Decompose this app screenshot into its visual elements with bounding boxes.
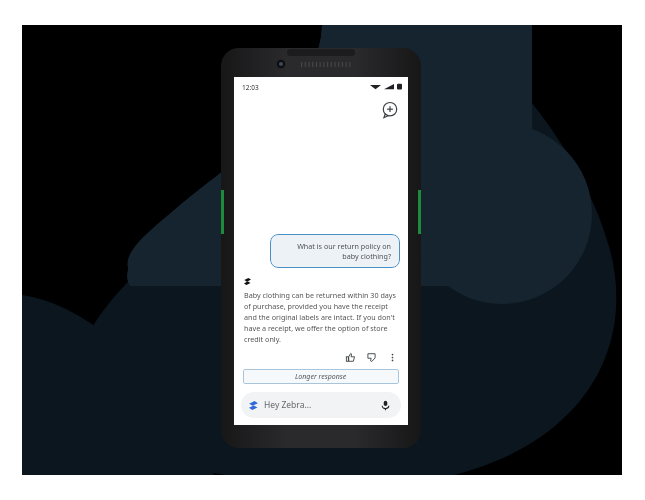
button[interactable]: More options — [385, 350, 399, 364]
staticText: Hey Zebra... — [264, 399, 312, 411]
staticText: Longer response — [295, 372, 347, 382]
button[interactable]: New chat — [380, 100, 400, 120]
button[interactable]: Longer response — [243, 369, 399, 384]
button[interactable]: Hey Zebra... — [241, 392, 401, 418]
button[interactable]: What is our return policy on baby clothi… — [270, 234, 400, 268]
staticText: Baby clothing can be returned within 30 … — [244, 290, 398, 344]
staticText: 12:03 — [242, 83, 259, 92]
button[interactable]: Voice input — [377, 397, 393, 413]
button[interactable]: Thumbs up — [343, 350, 357, 364]
staticText: What is our return policy on baby clothi… — [279, 241, 391, 261]
button[interactable]: Thumbs down — [364, 350, 378, 364]
